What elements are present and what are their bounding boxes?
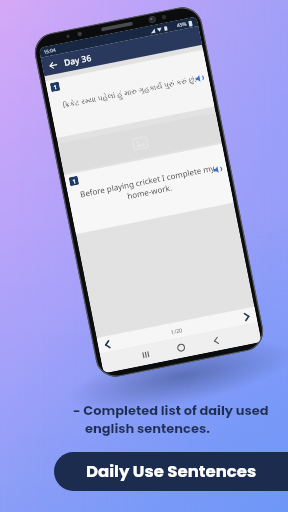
staticText: 1/20: [170, 326, 183, 335]
staticText: Day 36: [63, 52, 93, 69]
staticText: 1: [53, 83, 58, 90]
button[interactable]: [212, 336, 221, 345]
button[interactable]: [176, 343, 186, 352]
button[interactable]: 1: [45, 50, 214, 138]
staticText: english sentences.: [85, 419, 210, 437]
button[interactable]: 1: [64, 144, 234, 234]
staticText: ક્રિકેટ રમ્યા પહેલાં હું મારુ ગૃહકાર્ય પ…: [61, 74, 198, 110]
button[interactable]: [242, 312, 251, 322]
button[interactable]: [103, 339, 112, 350]
button[interactable]: Daily Use Sentences: [54, 452, 288, 491]
staticText: Daily Use Sentences: [86, 460, 257, 483]
button[interactable]: [141, 350, 150, 359]
staticText: 1: [72, 177, 77, 185]
staticText: - Completed list of daily used: [73, 401, 269, 419]
button[interactable]: [49, 61, 58, 70]
staticText: 15:04: [43, 46, 57, 56]
staticText: 45%: [176, 20, 187, 29]
staticText: Before playing cricket I complete my hom…: [79, 162, 218, 211]
